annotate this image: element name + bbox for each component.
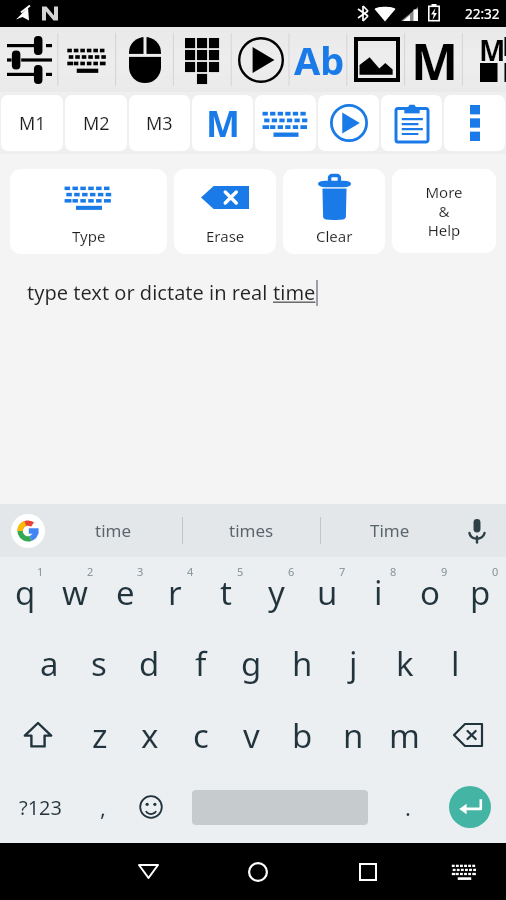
staticText: v [243,713,260,758]
button[interactable]: i [353,557,404,628]
staticText: 2 [87,564,94,579]
button[interactable]: toolbar action 0 [0,27,58,92]
staticText: d [139,641,160,686]
button[interactable]: Back [93,843,203,900]
button[interactable]: Emoji [125,771,177,843]
staticText: f [195,641,207,686]
button[interactable]: Enter [433,771,506,843]
staticText: y [268,570,285,615]
staticText: q [15,570,36,615]
button[interactable]: n [328,699,379,771]
staticText: e [116,570,135,615]
staticText: M2 [83,111,110,136]
staticText: M1 [19,111,46,136]
button[interactable]: Macro [192,95,253,151]
staticText: times [229,519,274,542]
button[interactable]: e [100,557,150,628]
button[interactable]: ?123 [0,771,80,843]
button[interactable]: . [383,771,433,843]
button[interactable]: v [226,699,277,771]
button[interactable]: M2 [65,95,127,151]
button[interactable]: t [200,557,251,628]
button[interactable]: toolbar action 1 [58,27,116,92]
staticText: Time [370,519,410,542]
button[interactable]: f [175,628,226,699]
staticText: a [40,641,59,686]
button[interactable]: Clear [283,169,385,254]
staticText: 1 [37,564,44,579]
staticText: m [389,713,420,758]
button[interactable]: m [379,699,430,771]
button[interactable]: More options [444,95,505,151]
button[interactable]: a [24,628,74,699]
button[interactable]: x [125,699,175,771]
staticText: , [100,792,106,822]
staticText: l [451,641,460,686]
button[interactable]: d [124,628,175,699]
staticText: w [62,570,88,615]
staticText: r [168,570,182,615]
button[interactable]: toolbar action 4 [232,27,290,92]
button[interactable]: h [277,628,328,699]
staticText: M [206,99,240,148]
staticText: 3 [137,564,144,579]
button[interactable]: w [50,557,100,628]
button[interactable]: k [379,628,430,699]
staticText: Clear [316,226,353,246]
button[interactable]: o [404,557,455,628]
button[interactable]: q [0,557,50,628]
button[interactable]: Keyboard [255,95,316,151]
button[interactable]: Home [203,843,313,900]
staticText: 4 [187,564,194,579]
button[interactable]: Clipboard [381,95,442,151]
staticText: 9 [441,564,448,579]
button[interactable]: Recents [313,843,423,900]
button[interactable]: toolbar action 6 [348,27,406,92]
button[interactable]: z [75,699,125,771]
staticText: time [273,279,316,306]
staticText: 8 [390,564,397,579]
button[interactable]: toolbar action 3 [174,27,232,92]
button[interactable]: toolbar action 5 [290,27,348,92]
button[interactable]: Backspace [430,699,506,771]
button[interactable]: toolbar action 7 [406,27,464,92]
button[interactable]: More & Help [392,169,496,253]
button[interactable]: toolbar action 2 [116,27,174,92]
button[interactable]: p [455,557,506,628]
button[interactable]: Time [321,504,458,557]
button[interactable]: s [74,628,124,699]
staticText: ?123 [19,794,62,821]
button[interactable]: r [150,557,200,628]
button[interactable]: M1 [1,95,63,151]
staticText: 5 [237,564,244,579]
staticText: M [411,27,459,92]
button[interactable]: Switch keyboard [423,843,506,900]
staticText: c [193,713,209,758]
button[interactable]: b [277,699,328,771]
button[interactable]: , [80,771,125,843]
button[interactable]: time [45,504,182,557]
button[interactable]: g [226,628,277,699]
button[interactable]: Play [318,95,379,151]
button[interactable]: Google [11,514,45,548]
button[interactable]: u [302,557,353,628]
staticText: i [374,570,383,615]
button[interactable]: l [430,628,481,699]
staticText: 7 [339,564,346,579]
button[interactable]: Type [10,169,167,254]
button[interactable]: times [183,504,320,557]
staticText: s [91,641,107,686]
button[interactable]: toolbar action 8 [464,27,506,92]
button[interactable]: Voice input [462,516,492,546]
staticText: M3 [146,111,173,136]
button[interactable]: c [175,699,226,771]
button[interactable]: M3 [129,95,190,151]
button[interactable]: Shift [0,699,75,771]
button[interactable]: y [251,557,302,628]
button[interactable]: Erase [174,169,276,254]
button[interactable]: Space [177,771,383,843]
staticText: x [141,713,159,758]
button[interactable]: j [328,628,379,699]
staticText: 6 [288,564,295,579]
staticText: g [241,641,262,686]
